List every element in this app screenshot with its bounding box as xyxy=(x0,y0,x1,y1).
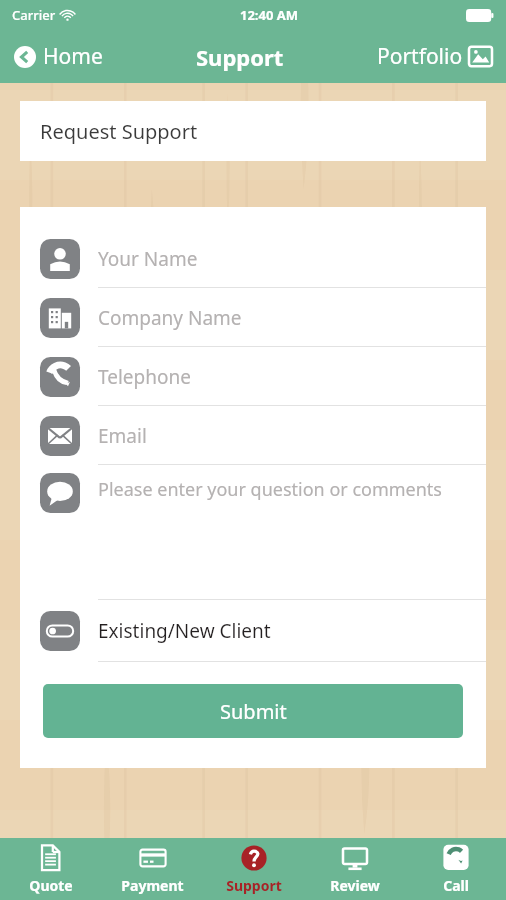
staticText: Company Name xyxy=(98,305,242,331)
button[interactable]: Review xyxy=(304,838,405,900)
button[interactable]: Existing/New Client xyxy=(20,600,486,662)
staticText: Quote xyxy=(29,876,73,895)
staticText: Review xyxy=(330,876,380,895)
button[interactable]: Home xyxy=(12,38,105,75)
staticText: Carrier xyxy=(12,6,56,24)
staticText: Support xyxy=(196,42,284,72)
button[interactable]: Email xyxy=(20,406,486,465)
button[interactable]: Submit xyxy=(43,684,463,738)
staticText: Existing/New Client xyxy=(98,618,271,644)
staticText: Support xyxy=(226,876,282,895)
button[interactable]: Request Support xyxy=(20,101,486,161)
button[interactable]: Call xyxy=(405,838,506,900)
staticText: Call xyxy=(443,876,469,895)
staticText: 12:40 AM xyxy=(240,6,299,24)
staticText: Please enter your question or comments xyxy=(98,477,442,502)
button[interactable]: Portfolio xyxy=(375,38,494,75)
button[interactable]: Support xyxy=(203,838,304,900)
button[interactable]: Payment xyxy=(102,838,203,900)
staticText: Your Name xyxy=(98,246,198,272)
staticText: Submit xyxy=(220,698,287,725)
staticText: Request Support xyxy=(40,118,198,145)
staticText: Home xyxy=(43,42,103,71)
button[interactable]: Quote xyxy=(0,838,102,900)
button[interactable]: Company Name xyxy=(20,288,486,347)
staticText: Payment xyxy=(121,876,184,895)
button[interactable]: Your Name xyxy=(20,229,486,288)
staticText: Email xyxy=(98,423,147,449)
staticText: Portfolio xyxy=(377,42,463,71)
button[interactable]: Telephone xyxy=(20,347,486,406)
staticText: Telephone xyxy=(98,364,191,390)
button[interactable]: Please enter your question or comments xyxy=(20,465,486,600)
